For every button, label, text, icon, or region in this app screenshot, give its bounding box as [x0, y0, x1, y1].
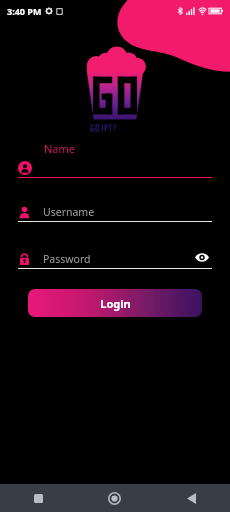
button[interactable]: Back — [153, 484, 230, 512]
button[interactable]: Recent apps — [0, 484, 76, 512]
button[interactable]: Name — [18, 140, 212, 178]
button[interactable]: Show password — [192, 248, 212, 266]
button[interactable]: Home — [76, 484, 153, 512]
button[interactable]: Username — [18, 196, 212, 222]
staticText: Login — [100, 296, 131, 311]
staticText: Name — [44, 141, 76, 156]
staticText: Username — [43, 205, 95, 219]
button[interactable]: Password — [18, 243, 212, 269]
staticText: 3:40 PM — [7, 5, 42, 17]
staticText: Password — [43, 252, 91, 266]
button[interactable]: Login — [28, 289, 202, 317]
